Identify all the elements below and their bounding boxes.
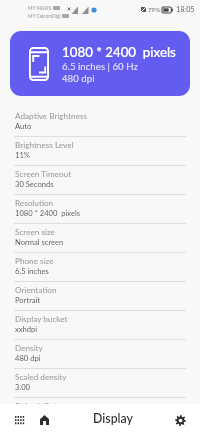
staticText: 480 dpi [15, 353, 41, 362]
button[interactable]: Resolution [0, 195, 200, 224]
button[interactable]: Scaled density [0, 369, 200, 398]
staticText: Screen size [15, 227, 55, 237]
staticText: 60 Hz [15, 411, 35, 420]
staticText: 480 dpi [62, 72, 95, 84]
staticText: Scaled density [15, 372, 67, 382]
staticText: 11% [15, 150, 30, 159]
staticText: Orientation [15, 285, 57, 295]
staticText: Phone size [15, 256, 54, 266]
button[interactable]: Screen size [0, 224, 200, 253]
staticText: xxhdpi [15, 324, 38, 333]
staticText: Resolution [15, 198, 54, 208]
button[interactable]: Density [0, 340, 200, 369]
staticText: MY MAXIS [28, 5, 52, 11]
button[interactable]: Settings [168, 408, 192, 432]
staticText: 6.5 inches | 60 Hz [62, 60, 138, 72]
staticText: Display [93, 411, 134, 426]
staticText: Display bucket [15, 314, 68, 324]
staticText: 18:05 [176, 5, 195, 14]
staticText: 79% [148, 6, 161, 13]
button[interactable]: Brightness Level [0, 137, 200, 166]
button[interactable]: Apps [7, 408, 31, 432]
staticText: Portrait [15, 295, 41, 304]
button[interactable]: 1080 * 2400 pixels [10, 31, 190, 96]
button[interactable]: Refresh Rate [0, 398, 200, 427]
button[interactable]: Phone size [0, 253, 200, 282]
button[interactable]: Home [32, 408, 56, 432]
button[interactable]: Orientation [0, 282, 200, 311]
staticText: MY CelcomDigi [28, 13, 61, 19]
staticText: Density [15, 343, 43, 353]
button[interactable]: Display [89, 409, 138, 428]
staticText: 30 Seconds [15, 179, 54, 188]
staticText: Screen Timeout [15, 169, 72, 179]
staticText: Normal screen [15, 237, 64, 246]
button[interactable]: Adaptive Brightness [0, 108, 200, 137]
staticText: 1080 * 2400 pixels [62, 44, 176, 60]
staticText: Brightness Level [15, 140, 74, 150]
button[interactable]: Display bucket [0, 311, 200, 340]
button[interactable]: Screen Timeout [0, 166, 200, 195]
staticText: 3.00 [15, 382, 31, 391]
staticText: Adaptive Brightness [15, 111, 88, 121]
staticText: 6.5 inches [15, 266, 49, 275]
staticText: Refresh Rate [15, 401, 61, 411]
staticText: Auto [15, 121, 32, 130]
staticText: 1080 * 2400 pixels [15, 208, 81, 217]
